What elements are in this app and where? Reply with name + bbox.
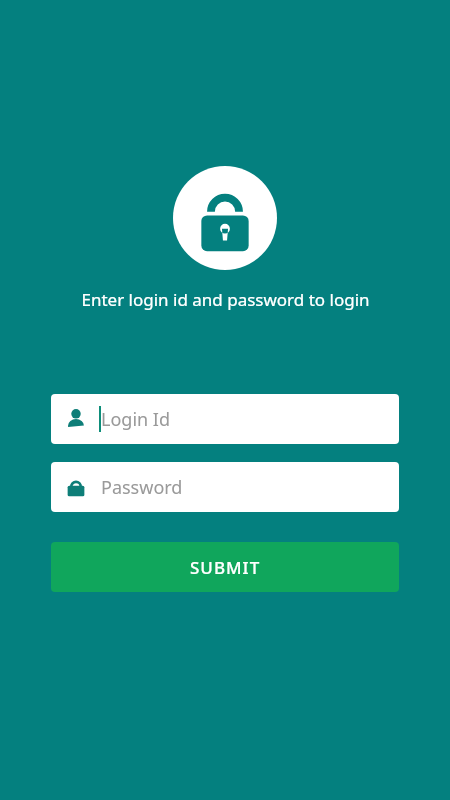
staticText: Enter login id and password to login bbox=[81, 288, 370, 311]
button[interactable]: SUBMIT bbox=[51, 542, 399, 592]
staticText: Login Id bbox=[101, 407, 171, 432]
button[interactable]: Password bbox=[51, 462, 399, 512]
staticText: SUBMIT bbox=[190, 556, 261, 579]
button[interactable]: Login Id bbox=[51, 394, 399, 444]
staticText: Password bbox=[101, 475, 183, 500]
